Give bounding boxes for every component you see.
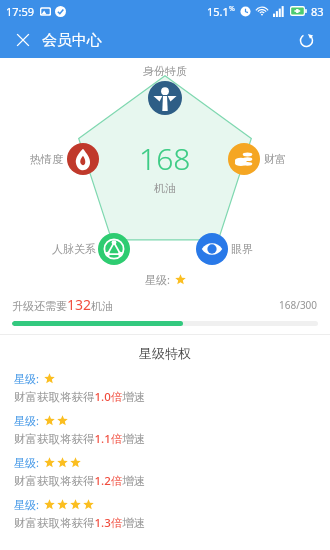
button[interactable]: Attribute: [148, 81, 182, 115]
button[interactable]: Attribute: [228, 143, 260, 175]
button[interactable]: 星级:: [0, 495, 330, 537]
staticText: 168: [139, 138, 191, 179]
staticText: %: [229, 4, 235, 14]
staticText: 168/300: [279, 298, 318, 312]
staticText: 财富获取将获得1.3倍增速: [14, 515, 146, 531]
staticText: 会员中心: [42, 31, 102, 50]
staticText: 星级:: [14, 455, 39, 470]
staticText: 升级还需要132机油: [12, 295, 114, 314]
button[interactable]: Close: [10, 27, 36, 53]
button[interactable]: Attribute: [67, 143, 99, 175]
button[interactable]: 星级:: [0, 369, 330, 411]
button[interactable]: 星级:: [0, 453, 330, 495]
button[interactable]: Refresh: [292, 26, 320, 54]
staticText: 人脉关系: [52, 242, 96, 256]
staticText: 眼界: [231, 242, 253, 256]
staticText: 星级:: [14, 371, 39, 386]
staticText: 17:59: [6, 4, 35, 19]
staticText: 15.1: [207, 4, 229, 19]
staticText: 财富获取将获得1.1倍增速: [14, 431, 146, 447]
button[interactable]: 星级:: [0, 411, 330, 453]
staticText: 热情度: [30, 152, 63, 166]
staticText: 机油: [154, 181, 176, 195]
staticText: 财富获取将获得1.2倍增速: [14, 473, 146, 489]
staticText: 星级:: [14, 413, 39, 428]
button[interactable]: Attribute: [196, 233, 228, 265]
staticText: 83: [311, 4, 324, 19]
staticText: 身份特质: [143, 64, 187, 78]
button[interactable]: Attribute: [98, 233, 130, 265]
staticText: 财富: [264, 152, 286, 166]
staticText: 星级:: [145, 272, 170, 287]
staticText: 星级:: [14, 497, 39, 512]
staticText: 星级特权: [139, 345, 191, 361]
staticText: 财富获取将获得1.0倍增速: [14, 389, 146, 405]
